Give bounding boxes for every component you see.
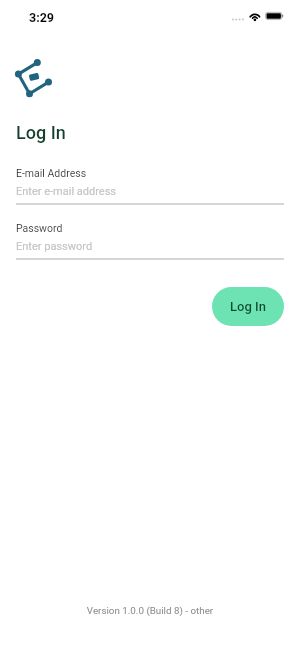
staticText: 3:29 [29, 10, 55, 25]
staticText: Enter password [16, 240, 93, 253]
staticText: E-mail Address [16, 167, 87, 179]
staticText: Log In [16, 122, 66, 143]
button[interactable]: Enter password [16, 236, 284, 260]
staticText: Log In [230, 299, 266, 314]
staticText: Version 1.0.0 (Build 8) - other [0, 605, 300, 616]
button[interactable]: Log In [212, 287, 284, 326]
staticText: Password [16, 222, 63, 234]
button[interactable]: Enter e-mail address [16, 181, 284, 205]
staticText: Enter e-mail address [16, 185, 116, 198]
